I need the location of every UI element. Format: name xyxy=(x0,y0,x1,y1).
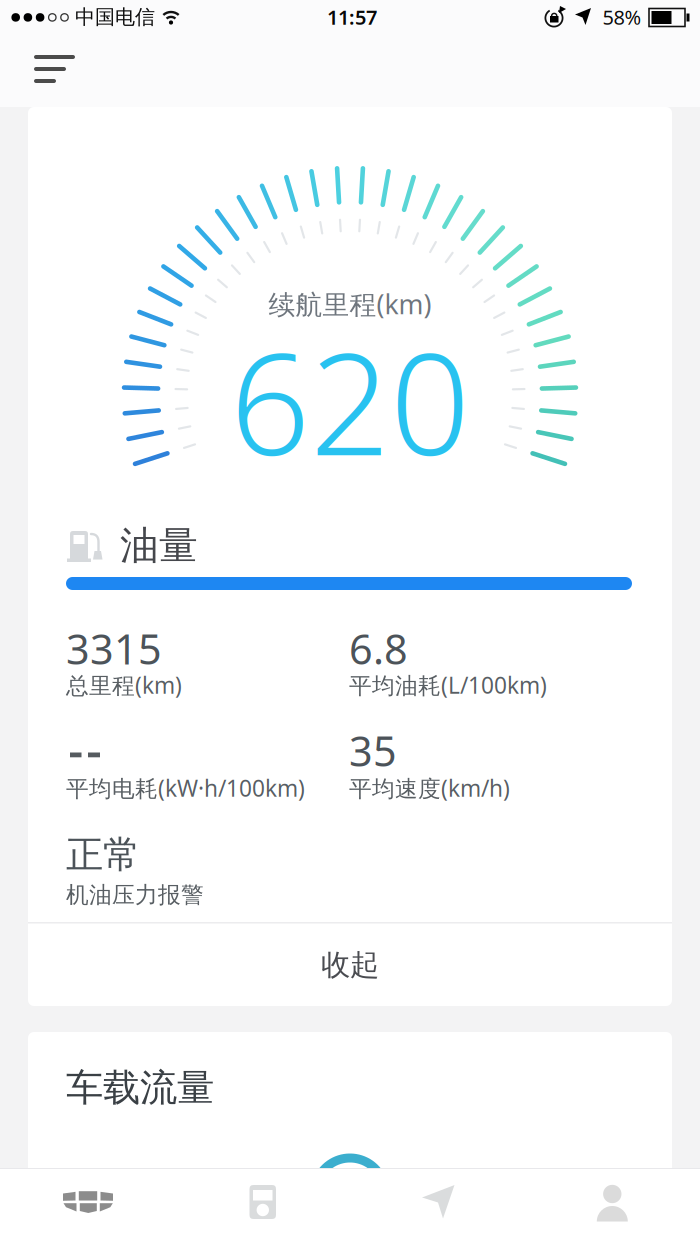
staticText: 6.8 xyxy=(349,621,408,676)
staticText: 收起 xyxy=(321,947,379,983)
staticText: 续航里程(km) xyxy=(268,286,431,322)
staticText: 620 xyxy=(230,308,470,494)
staticText: 油量 xyxy=(120,522,198,569)
staticText: 总里程(km) xyxy=(66,670,182,700)
staticText: 35 xyxy=(349,723,397,778)
staticText: 机油压力报警 xyxy=(66,881,204,909)
staticText: 58% xyxy=(602,4,641,30)
button[interactable]: Menu xyxy=(34,53,90,95)
staticText: 3315 xyxy=(66,621,162,676)
staticText: 平均电耗(kW·h/100km) xyxy=(66,773,305,803)
button[interactable]: Vehicle xyxy=(0,1169,175,1244)
staticText: 中国电信 xyxy=(75,5,155,29)
staticText: 正常 xyxy=(66,832,140,878)
button[interactable]: Media xyxy=(175,1169,350,1244)
button[interactable]: Profile xyxy=(525,1169,700,1244)
button[interactable]: 收起 xyxy=(28,924,672,1006)
staticText: 车载流量 xyxy=(66,1065,214,1111)
staticText: 11:57 xyxy=(327,4,377,30)
staticText: 平均速度(km/h) xyxy=(349,773,510,803)
button[interactable]: Navigation xyxy=(350,1169,525,1244)
staticText: 平均油耗(L/100km) xyxy=(349,670,547,700)
